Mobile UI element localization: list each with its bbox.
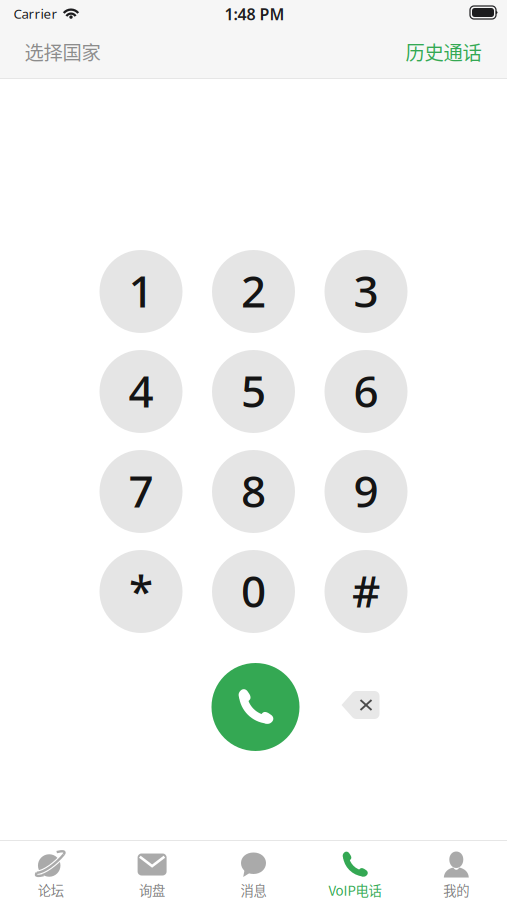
button[interactable]: 2 [212, 250, 295, 333]
button[interactable]: 0 [212, 550, 295, 633]
button[interactable]: 选择国家 [2, 25, 122, 77]
button[interactable]: 询盘 [101, 841, 203, 900]
staticText: 我的 [443, 880, 469, 900]
button[interactable]: 1 [99, 250, 182, 333]
staticText: 询盘 [139, 880, 165, 900]
staticText: 5 [241, 361, 266, 420]
button[interactable]: Call [211, 663, 299, 751]
staticText: 消息 [240, 880, 266, 900]
staticText: 1:48 PM [224, 3, 284, 25]
button[interactable]: Delete [333, 682, 388, 728]
button[interactable]: * [99, 550, 182, 633]
staticText: 8 [241, 461, 266, 520]
button[interactable]: 4 [99, 350, 182, 433]
button[interactable]: 9 [324, 450, 407, 533]
staticText: Carrier [13, 5, 57, 22]
button[interactable]: 6 [324, 350, 407, 433]
button[interactable]: VoIP电话 [304, 841, 406, 900]
staticText: 2 [241, 261, 266, 320]
button[interactable]: 我的 [406, 841, 507, 900]
staticText: 3 [353, 261, 378, 320]
staticText: 9 [353, 461, 378, 520]
button[interactable]: 论坛 [0, 841, 101, 900]
staticText: * [129, 561, 153, 620]
staticText: VoIP电话 [328, 880, 381, 900]
staticText: 选择国家 [24, 37, 100, 65]
staticText: 历史通话 [405, 37, 481, 65]
staticText: 论坛 [38, 880, 64, 900]
button[interactable]: 8 [212, 450, 295, 533]
staticText: 7 [128, 461, 153, 520]
staticText: 6 [353, 361, 378, 420]
staticText: # [352, 561, 380, 620]
button[interactable]: 7 [99, 450, 182, 533]
staticText: 4 [128, 361, 153, 420]
button[interactable]: 5 [212, 350, 295, 433]
button[interactable]: 3 [324, 250, 407, 333]
staticText: 0 [241, 561, 266, 620]
button[interactable]: 消息 [203, 841, 304, 900]
button[interactable]: # [324, 550, 407, 633]
button[interactable]: 历史通话 [383, 25, 503, 77]
staticText: 1 [128, 261, 153, 320]
